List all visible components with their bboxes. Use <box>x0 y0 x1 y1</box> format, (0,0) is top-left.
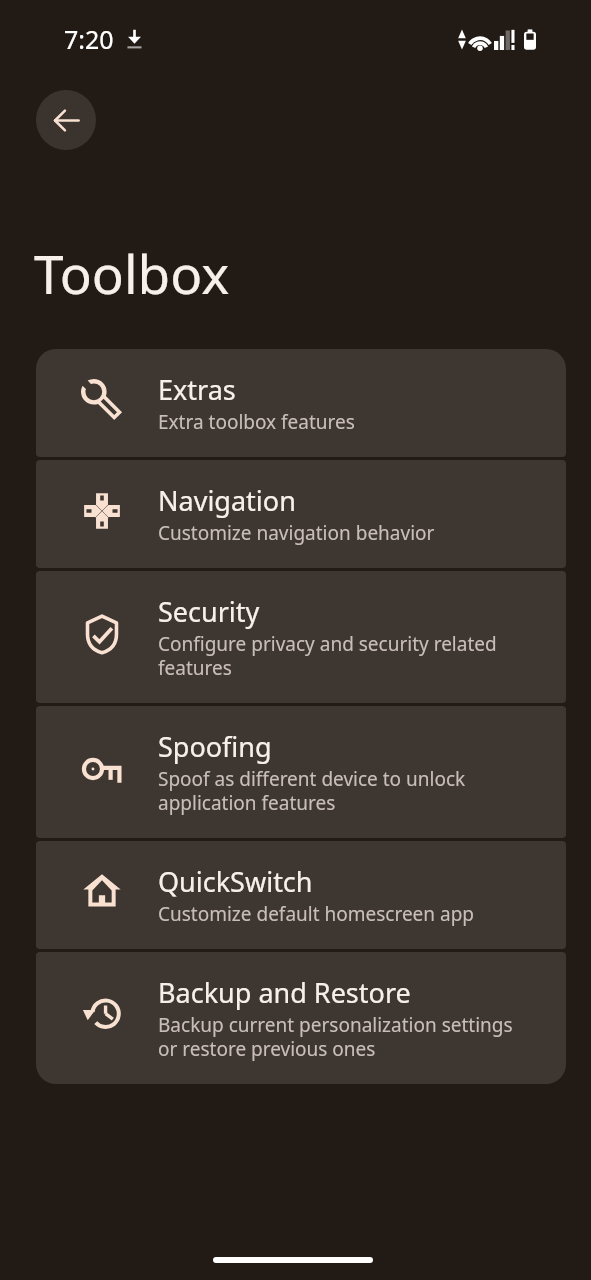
staticText: QuickSwitch <box>158 863 313 900</box>
staticText: Navigation <box>158 482 296 519</box>
staticText: 7:20 <box>64 22 114 56</box>
button[interactable]: Security <box>36 571 566 703</box>
staticText: Customize navigation behavior <box>158 522 435 546</box>
button[interactable]: Spoofing <box>36 706 566 838</box>
staticText: Toolbox <box>34 245 230 307</box>
staticText: Spoofing <box>158 728 272 765</box>
button[interactable]: Back <box>36 90 96 150</box>
staticText: Backup and Restore <box>158 974 411 1011</box>
staticText: Security <box>158 593 260 630</box>
staticText: Extras <box>158 371 236 408</box>
staticText: Extra toolbox features <box>158 411 355 435</box>
button[interactable]: Navigation <box>36 460 566 568</box>
button[interactable]: Backup and Restore <box>36 952 566 1084</box>
staticText: Spoof as different device to unlock appl… <box>158 768 518 816</box>
button[interactable]: QuickSwitch <box>36 841 566 949</box>
staticText: Backup current personalization settings … <box>158 1014 518 1062</box>
staticText: Configure privacy and security related f… <box>158 633 518 681</box>
staticText: Customize default homescreen app <box>158 903 475 927</box>
button[interactable]: Extras <box>36 349 566 457</box>
